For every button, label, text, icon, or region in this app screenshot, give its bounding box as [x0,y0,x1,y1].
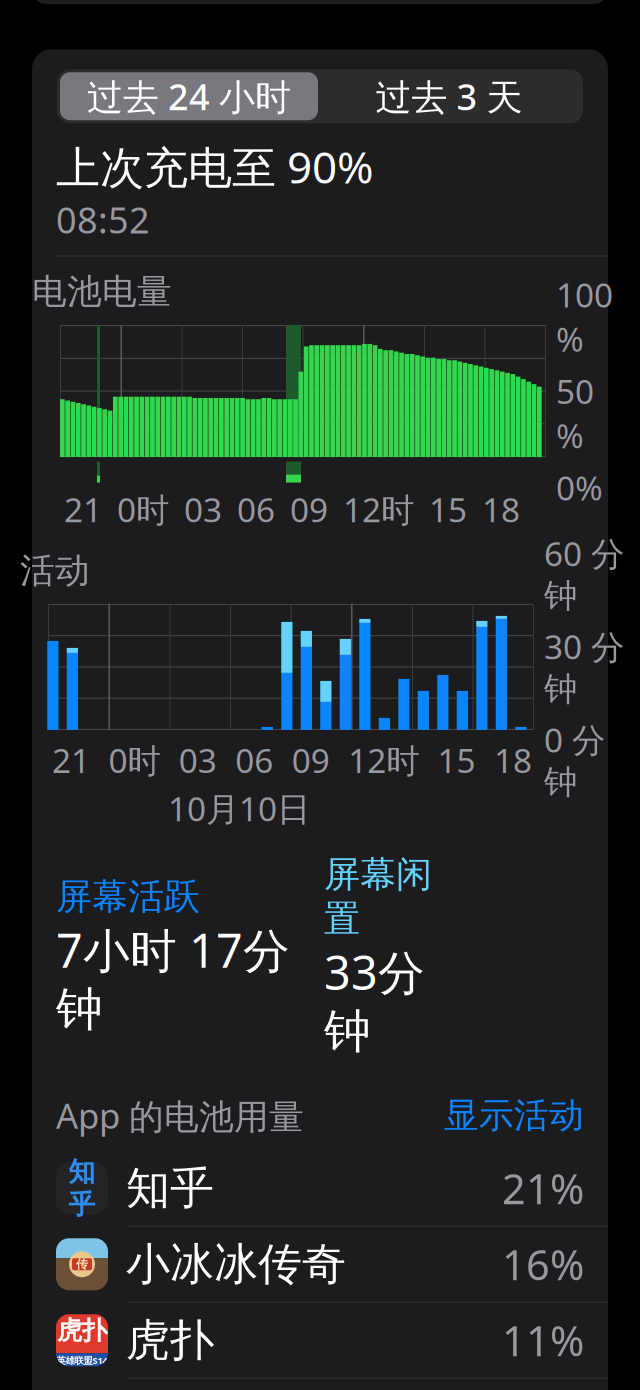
staticText: 屏幕闲置 [324,852,432,941]
button[interactable]: 显示活动 [432,1088,584,1143]
staticText: 0 分钟 [544,717,605,803]
button[interactable]: 过去 3 天 [318,72,580,120]
staticText: 09 [292,738,330,782]
staticText: 12时 [343,487,414,531]
staticText: 屏幕活跃 [56,875,200,919]
staticText: 30 分钟 [544,624,624,709]
staticText: 0时 [108,738,160,782]
staticText: 15 [429,487,467,531]
staticText: 21 [52,738,90,782]
staticText: App 的电池用量 [56,1092,304,1139]
staticText: 12时 [348,738,419,782]
staticText: 100% [556,272,613,361]
staticText: 11% [502,1313,584,1368]
button[interactable]: 过去 24 小时 [60,72,318,120]
staticText: 知乎 [126,1161,214,1215]
staticText: 虎扑 [126,1313,214,1367]
staticText: 过去 24 小时 [87,72,291,120]
staticText: 60 分钟 [544,531,624,616]
staticText: 知乎 [68,1155,95,1221]
staticText: 10月10日 [168,786,310,830]
staticText: 33分钟 [324,941,425,1060]
staticText: 虎扑 [57,1315,107,1346]
staticText: 7小时 17分钟 [56,919,290,1038]
staticText: 18 [494,738,532,782]
staticText: 50% [556,369,594,457]
staticText: 电池电量 [32,270,172,313]
staticText: 18 [482,487,520,531]
staticText: 03 [179,738,217,782]
staticText: 活动 [20,549,90,592]
staticText: 过去 3 天 [375,72,522,120]
staticText: 上次充电至 90% [56,137,374,196]
staticText: 08:52 [56,196,150,243]
staticText: 21 [64,487,102,531]
button[interactable]: 传 [32,1227,608,1303]
staticText: 0% [556,465,603,510]
staticText: 小冰冰传奇 [126,1237,346,1291]
staticText: 显示活动 [444,1094,584,1137]
staticText: 0时 [117,487,169,531]
button[interactable]: 虎扑 [32,1303,608,1379]
staticText: 03 [184,487,222,531]
button[interactable]: 知乎 [32,1151,608,1227]
staticText: 21% [502,1161,584,1216]
staticText: 英雄联盟S14 [56,1354,107,1366]
staticText: 16% [502,1237,584,1292]
staticText: 传 [76,1257,88,1272]
staticText: 09 [290,487,328,531]
staticText: 15 [438,738,476,782]
staticText: 06 [235,738,273,782]
staticText: 06 [237,487,275,531]
